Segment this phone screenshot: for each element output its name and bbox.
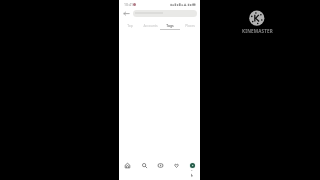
staticText: Tags bbox=[166, 23, 174, 27]
button[interactable]: Profile bbox=[184, 161, 200, 180]
button[interactable]: Top bbox=[119, 21, 140, 30]
button[interactable]: Likes bbox=[168, 161, 184, 180]
button[interactable] bbox=[133, 10, 197, 17]
button[interactable]: Home bbox=[119, 161, 136, 180]
staticText: Top bbox=[127, 23, 133, 27]
button[interactable]: Places bbox=[180, 21, 200, 30]
button[interactable]: Tags bbox=[160, 21, 180, 30]
staticText: Places bbox=[185, 23, 195, 27]
staticText: 10:41 bbox=[124, 2, 133, 7]
button[interactable]: Back bbox=[120, 9, 132, 19]
button[interactable]: Reels bbox=[152, 161, 168, 180]
button[interactable]: Accounts bbox=[140, 21, 160, 30]
staticText: Accounts bbox=[143, 23, 158, 27]
button[interactable]: Search bbox=[136, 161, 152, 180]
staticText: KINEMASTER bbox=[242, 28, 273, 34]
